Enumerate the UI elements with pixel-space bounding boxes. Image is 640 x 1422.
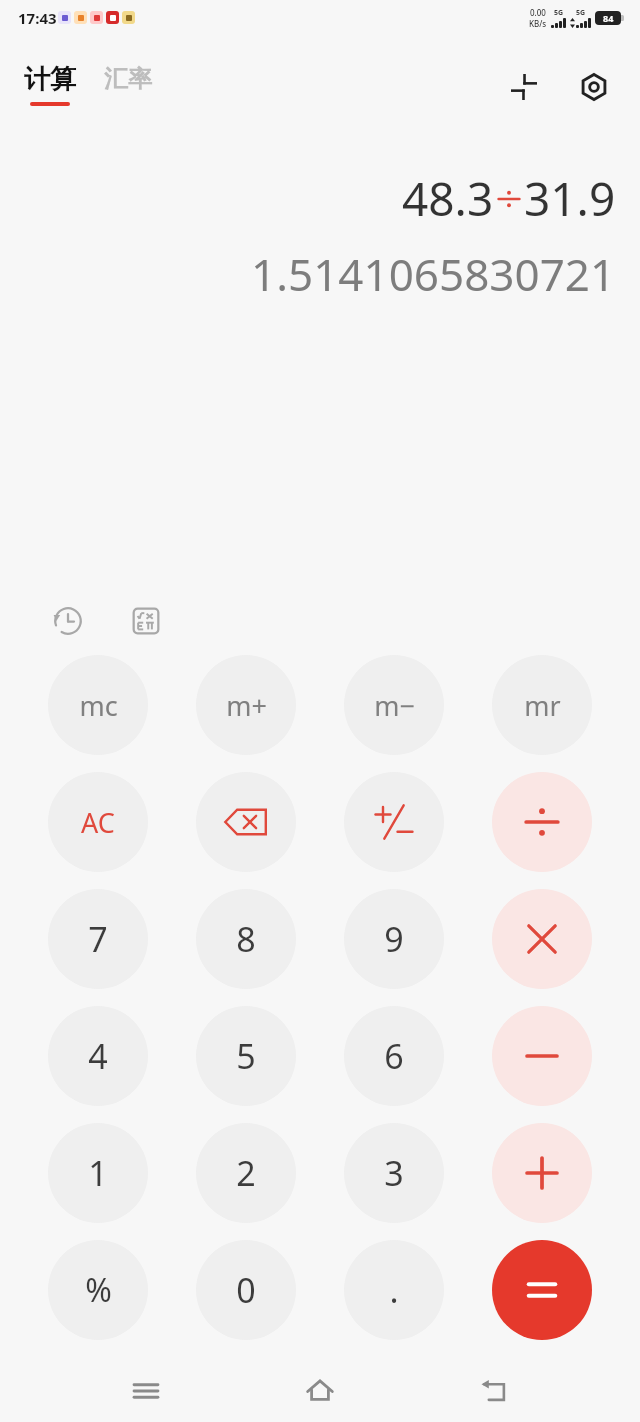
staticText: 7	[88, 916, 108, 962]
button[interactable]: History	[48, 601, 88, 641]
staticText: 3	[384, 1150, 404, 1196]
button[interactable]: Minus	[492, 1006, 592, 1106]
staticText: m−	[374, 687, 415, 724]
button[interactable]: 6	[344, 1006, 444, 1106]
staticText: 5G	[554, 8, 564, 18]
staticText: 2	[236, 1150, 256, 1196]
button[interactable]: 0	[196, 1240, 296, 1340]
staticText: AC	[81, 804, 115, 841]
button[interactable]: %	[48, 1240, 148, 1340]
button[interactable]: mr	[492, 655, 592, 755]
staticText: 31.9	[524, 167, 616, 230]
button[interactable]: Equals	[492, 1240, 592, 1340]
button[interactable]: 8	[196, 889, 296, 989]
button[interactable]: 9	[344, 889, 444, 989]
button[interactable]: Divide	[492, 772, 592, 872]
button[interactable]: Multiply	[492, 889, 592, 989]
button[interactable]: Scientific	[126, 601, 166, 641]
button[interactable]: 1	[48, 1123, 148, 1223]
button[interactable]: Settings	[572, 65, 616, 109]
button[interactable]: Collapse	[502, 65, 546, 109]
staticText: 9	[384, 916, 404, 962]
button[interactable]: 7	[48, 889, 148, 989]
staticText: 0.00	[530, 7, 546, 18]
button[interactable]: AC	[48, 772, 148, 872]
staticText: 5G	[576, 8, 586, 18]
staticText: 84	[603, 12, 614, 24]
staticText: 1	[88, 1150, 108, 1196]
staticText: mc	[79, 687, 118, 724]
staticText: 1.5141065830721	[251, 244, 616, 304]
button[interactable]: Plus minus	[344, 772, 444, 872]
staticText: 8	[236, 916, 256, 962]
staticText: 17:43	[18, 8, 57, 28]
button[interactable]: 2	[196, 1123, 296, 1223]
staticText: mr	[524, 687, 561, 724]
button[interactable]: .	[344, 1240, 444, 1340]
button[interactable]: 5	[196, 1006, 296, 1106]
button[interactable]: 4	[48, 1006, 148, 1106]
button[interactable]: mc	[48, 655, 148, 755]
staticText: KB/s	[529, 18, 547, 29]
staticText: 48.3	[402, 167, 494, 230]
button[interactable]: Back	[466, 1363, 522, 1419]
button[interactable]: m−	[344, 655, 444, 755]
staticText: m+	[226, 687, 267, 724]
button[interactable]: Delete	[196, 772, 296, 872]
button[interactable]: m+	[196, 655, 296, 755]
button[interactable]: 3	[344, 1123, 444, 1223]
button[interactable]: 汇率	[100, 64, 156, 106]
staticText: .	[389, 1267, 399, 1313]
button[interactable]: 计算	[22, 63, 78, 106]
button[interactable]: Home	[292, 1363, 348, 1419]
staticText: %	[85, 1268, 112, 1312]
staticText: 0	[236, 1267, 256, 1313]
button[interactable]: Recents	[118, 1363, 174, 1419]
staticText: 汇率	[104, 64, 152, 94]
staticText: 4	[88, 1033, 108, 1079]
staticText: 计算	[24, 63, 76, 96]
button[interactable]: Plus	[492, 1123, 592, 1223]
staticText: 5	[236, 1033, 256, 1079]
staticText: 6	[384, 1033, 404, 1079]
